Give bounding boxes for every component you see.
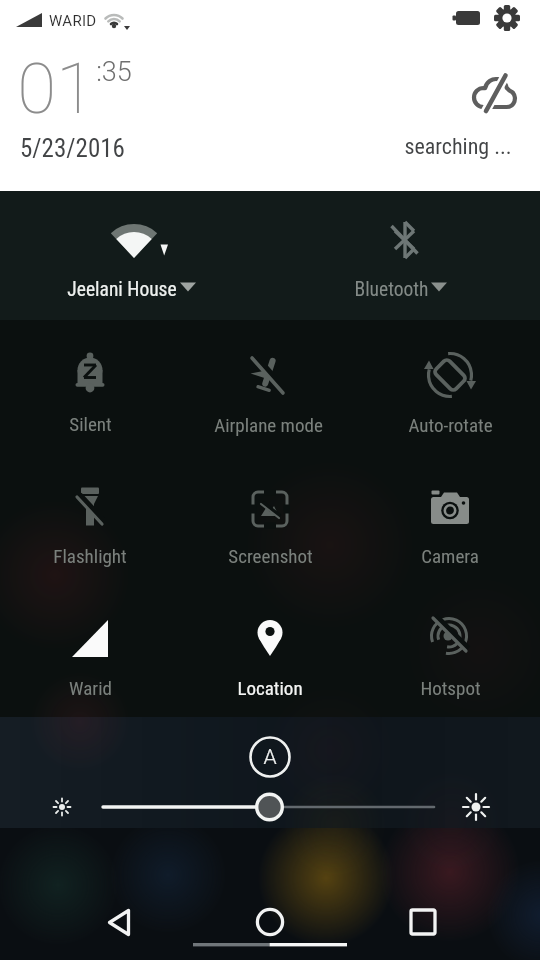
staticText: Warid	[69, 677, 112, 699]
button[interactable]	[399, 898, 447, 946]
button[interactable]	[180, 584, 360, 716]
staticText: :35	[96, 56, 132, 88]
staticText: searching ...	[404, 134, 512, 160]
button[interactable]	[360, 584, 540, 716]
staticText: WARID	[49, 12, 97, 30]
button[interactable]	[270, 191, 540, 320]
button[interactable]	[0, 452, 180, 584]
button[interactable]	[0, 584, 180, 716]
staticText: Silent	[69, 413, 112, 435]
staticText: Camera	[421, 545, 479, 567]
button[interactable]	[492, 3, 522, 33]
button[interactable]	[0, 320, 180, 452]
staticText: A	[263, 745, 277, 770]
button[interactable]	[180, 452, 360, 584]
button[interactable]	[96, 898, 144, 946]
staticText: Bluetooth	[354, 278, 429, 301]
button[interactable]	[360, 320, 540, 452]
staticText: Jeelani House	[67, 278, 177, 301]
button[interactable]	[360, 452, 540, 584]
button[interactable]	[180, 320, 360, 452]
button[interactable]	[95, 790, 445, 824]
staticText: Location	[237, 677, 303, 699]
staticText: Screenshot	[228, 545, 313, 567]
button[interactable]	[0, 191, 270, 320]
button[interactable]	[248, 735, 292, 779]
staticText: 01	[17, 47, 95, 130]
staticText: Auto-rotate	[408, 414, 493, 436]
staticText: Airplane mode	[214, 414, 323, 436]
button[interactable]	[246, 898, 294, 946]
staticText: Hotspot	[420, 677, 481, 699]
staticText: Flashlight	[53, 545, 127, 567]
staticText: 5/23/2016	[20, 134, 125, 163]
